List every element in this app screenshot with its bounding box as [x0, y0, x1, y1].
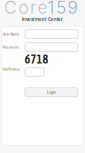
staticText: Investment Center: [22, 17, 63, 22]
staticText: Password: [2, 45, 18, 49]
staticText: Login: [47, 90, 56, 94]
staticText: 159: [47, 0, 77, 18]
staticText: Verification: [2, 67, 20, 71]
staticText: 6718: [25, 52, 49, 66]
button[interactable]: Login: [25, 88, 78, 97]
staticText: Core: [4, 0, 47, 18]
staticText: User Name: [2, 32, 19, 36]
